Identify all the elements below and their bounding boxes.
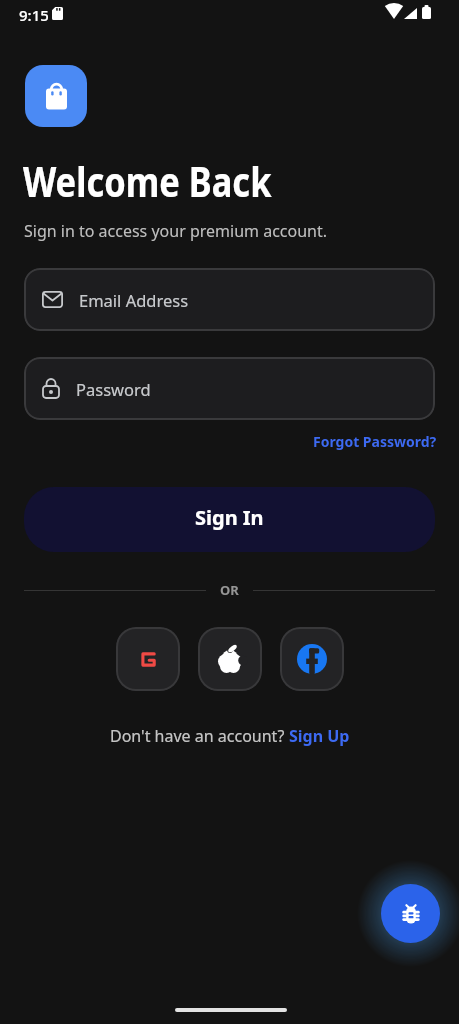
button[interactable]: Password: [24, 357, 435, 420]
button[interactable]: Sign In: [24, 487, 435, 552]
button[interactable]: [116, 627, 180, 691]
button[interactable]: Sign Up: [289, 725, 350, 747]
button[interactable]: [381, 884, 440, 943]
staticText: Password: [76, 378, 151, 400]
button[interactable]: [280, 627, 344, 691]
button[interactable]: Forgot Password?: [313, 432, 437, 451]
staticText: Sign in to access your premium account.: [24, 220, 328, 242]
staticText: Sign In: [195, 504, 264, 531]
staticText: 9:15: [19, 5, 49, 25]
staticText: Don't have an account?: [110, 725, 289, 747]
staticText: Welcome Back: [23, 153, 272, 209]
staticText: OR: [220, 581, 239, 599]
button[interactable]: [198, 627, 262, 691]
staticText: Email Address: [79, 289, 189, 311]
button[interactable]: Email Address: [24, 268, 435, 331]
